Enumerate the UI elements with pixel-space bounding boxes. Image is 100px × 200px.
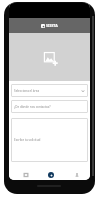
staticText: SIESTA [46, 23, 58, 28]
staticText: ¿De dónde nos contactas? [14, 105, 51, 109]
button[interactable]: ¿De dónde nos contactas? [11, 100, 88, 113]
button[interactable]: New request [46, 170, 55, 179]
button[interactable]: Selecciona el área [11, 84, 88, 97]
button[interactable]: Profile [72, 170, 81, 179]
button[interactable]: Add photo [9, 33, 90, 81]
button[interactable]: SIESTA [9, 18, 90, 33]
button[interactable]: Requests [21, 170, 30, 179]
staticText: Selecciona el área [14, 89, 40, 93]
button[interactable]: Escribe tu solicitud [11, 118, 88, 162]
staticText: Escribe tu solicitud [14, 138, 88, 142]
